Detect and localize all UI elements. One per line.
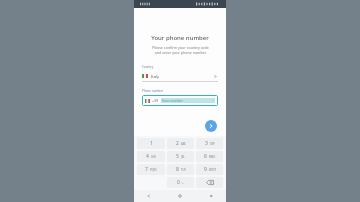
button[interactable]: 7 [137, 164, 165, 175]
staticText: MNO [209, 155, 216, 159]
staticText: 8 [176, 166, 179, 173]
staticText: 6 [204, 153, 207, 160]
staticText: WXYZ [209, 168, 216, 172]
staticText: 1 [150, 140, 153, 147]
button[interactable]: Phone number [142, 89, 218, 106]
staticText: DEF [210, 142, 215, 146]
button[interactable]: 0 [167, 177, 194, 188]
button[interactable]: Country [142, 65, 218, 82]
staticText: JKL [181, 155, 185, 159]
staticText: 2 [176, 140, 179, 147]
staticText: PQRS [150, 168, 157, 172]
staticText: Your number [162, 98, 183, 103]
staticText: 5 [176, 153, 179, 160]
button[interactable]: Next [205, 120, 217, 132]
staticText: + [182, 181, 184, 185]
button[interactable]: Backspace [196, 177, 223, 188]
button[interactable]: 1 [137, 138, 165, 149]
button[interactable]: 9 [196, 164, 223, 175]
button[interactable]: Home [164, 190, 195, 202]
staticText: Your phone number [151, 34, 209, 42]
staticText: 3 [205, 140, 208, 147]
staticText: 9 [204, 166, 207, 173]
staticText: ABC [181, 142, 186, 146]
button[interactable]: Back [134, 190, 164, 202]
staticText: 7 [145, 166, 148, 173]
button[interactable]: 2 [167, 138, 194, 149]
button[interactable]: Recent apps [195, 190, 226, 202]
staticText: GHI [151, 155, 156, 159]
button[interactable]: 6 [196, 151, 223, 162]
staticText: TUV [181, 168, 186, 172]
staticText: Please confirm your country code and ent… [152, 45, 209, 55]
staticText: 4 [146, 153, 149, 160]
staticText: Phone number [142, 89, 164, 93]
button[interactable]: 8 [167, 164, 194, 175]
staticText: Country [142, 65, 154, 69]
button[interactable]: 5 [167, 151, 194, 162]
staticText: 0 [177, 179, 180, 186]
button[interactable]: 4 [137, 151, 165, 162]
staticText: Italy [151, 74, 160, 79]
button[interactable]: 3 [196, 138, 223, 149]
staticText: +39 [152, 98, 159, 103]
